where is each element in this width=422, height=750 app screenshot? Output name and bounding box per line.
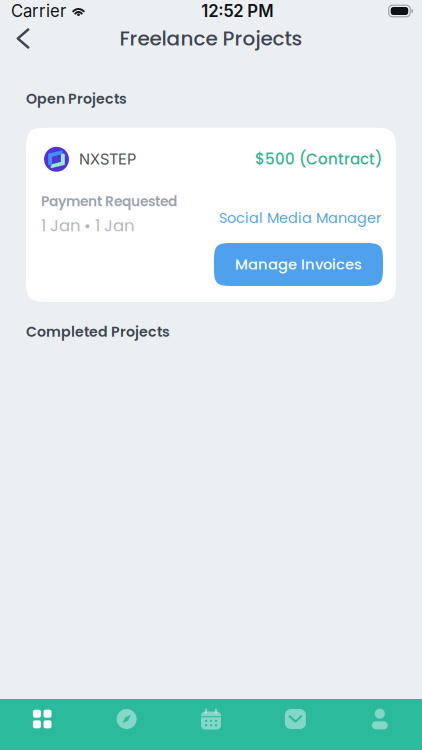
button[interactable]: Messages [253, 699, 338, 750]
staticText: Completed Projects [26, 322, 170, 342]
staticText: NXSTEP [79, 150, 136, 168]
staticText: Carrier [11, 1, 66, 21]
staticText: $500 (Contract) [255, 149, 382, 170]
staticText: Social Media Manager [219, 208, 381, 228]
staticText: 1 Jan • 1 Jan [41, 214, 134, 237]
button[interactable]: Manage Invoices [214, 243, 383, 286]
button[interactable]: Profile [338, 699, 422, 750]
staticText: Freelance Projects [119, 24, 302, 52]
button[interactable]: Calendar [169, 699, 253, 750]
button[interactable]: Dashboard [0, 699, 84, 750]
staticText: Payment Requested [41, 192, 177, 211]
button[interactable]: Back [0, 19, 46, 57]
staticText: Open Projects [26, 89, 127, 109]
staticText: Manage Invoices [235, 254, 362, 275]
staticText: 12:52 PM [201, 1, 273, 21]
button[interactable]: Explore [84, 699, 169, 750]
